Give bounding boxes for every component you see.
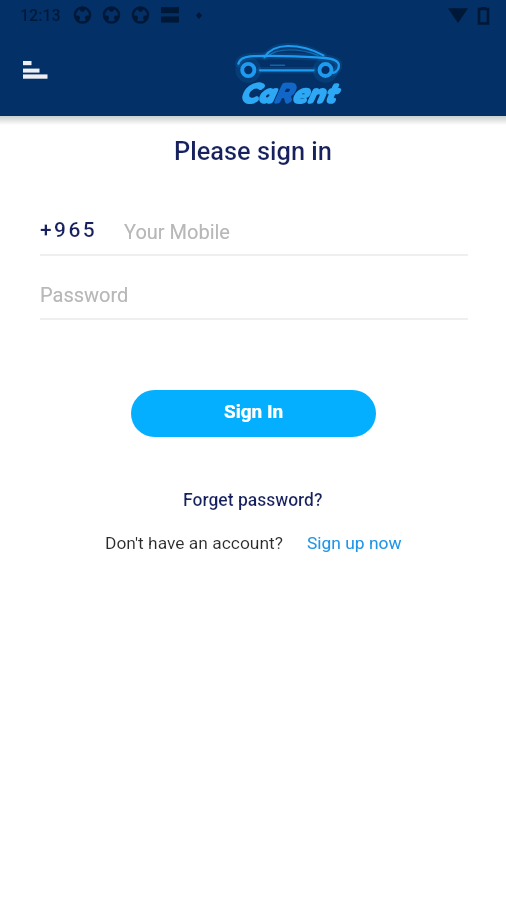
staticText: Password <box>40 283 129 306</box>
button[interactable]: Sign In <box>131 390 376 437</box>
staticText: R <box>273 75 291 110</box>
button[interactable]: Forget password? <box>175 486 331 515</box>
staticText: 12:13 <box>20 6 61 25</box>
staticText: +965 <box>40 218 98 243</box>
staticText: Please sign in <box>0 136 506 166</box>
button[interactable]: Menu <box>23 61 48 79</box>
staticText: Sign up now <box>307 533 402 553</box>
staticText: Forget password? <box>183 490 323 511</box>
staticText: Ca <box>239 75 273 110</box>
staticText: Sign In <box>224 400 284 422</box>
staticText: Your Mobile <box>124 220 230 243</box>
button[interactable]: Sign up now <box>307 533 402 553</box>
staticText: Don't have an account? <box>105 533 283 553</box>
staticText: ent <box>291 75 336 110</box>
